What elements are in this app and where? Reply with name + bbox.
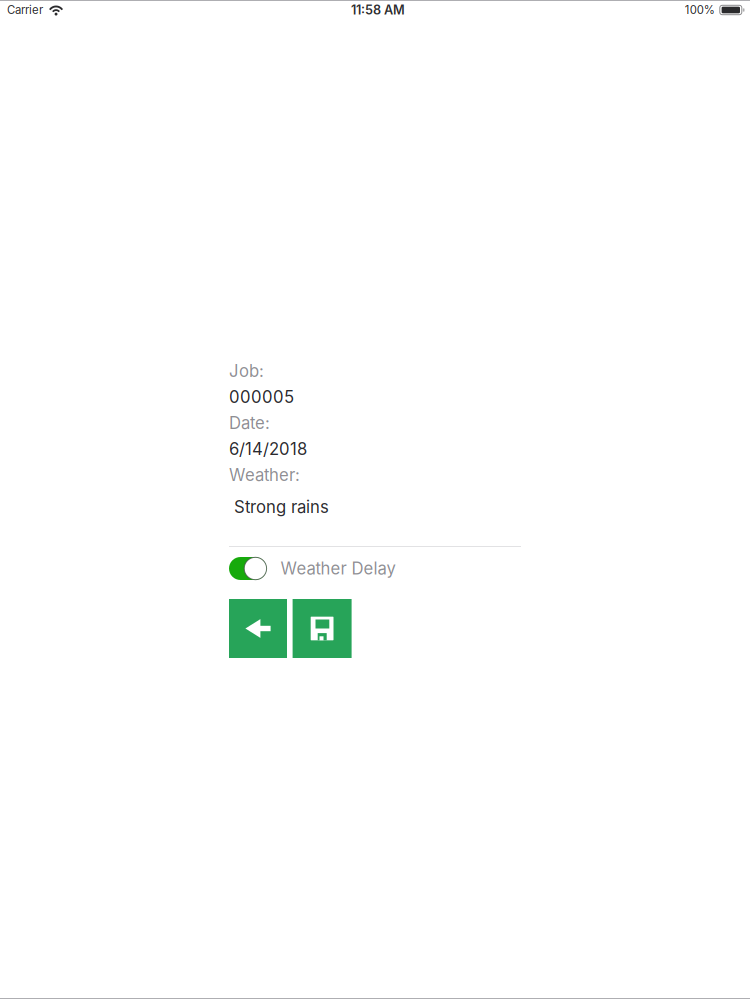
- staticText: 100%: [685, 3, 715, 17]
- staticText: 11:58 AM: [351, 2, 405, 18]
- staticText: Strong rains: [234, 497, 329, 517]
- staticText: Weather Delay: [281, 558, 396, 579]
- staticText: Weather:: [229, 465, 300, 485]
- button[interactable]: Save: [293, 599, 352, 658]
- staticText: 000005: [229, 387, 294, 407]
- button[interactable]: Weather Delay: [229, 553, 396, 584]
- staticText: Job:: [229, 361, 264, 381]
- staticText: Carrier: [7, 3, 43, 17]
- staticText: 6/14/2018: [229, 439, 307, 459]
- staticText: Date:: [229, 413, 270, 433]
- button[interactable]: Back: [229, 599, 287, 658]
